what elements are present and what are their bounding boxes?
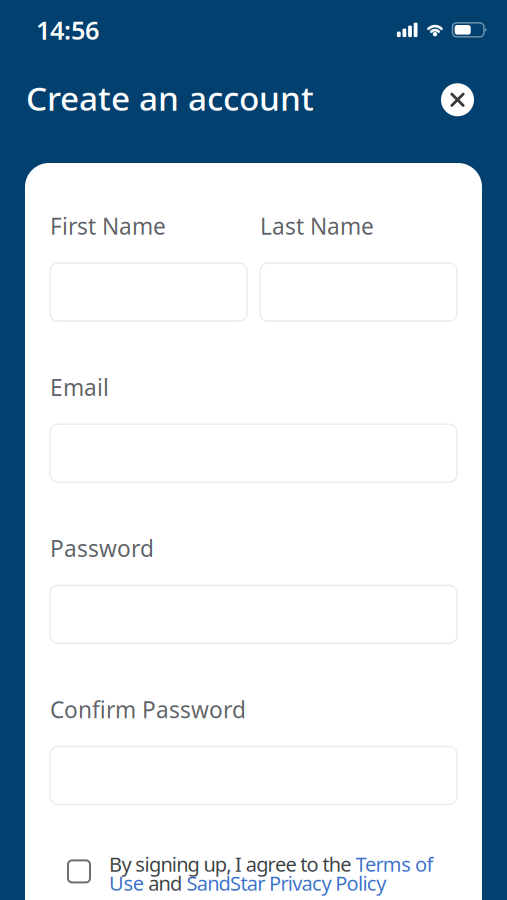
staticText: Last Name — [260, 211, 374, 241]
staticText: Password — [50, 533, 154, 563]
staticText: Terms of — [356, 851, 433, 877]
staticText: Create an account — [26, 76, 314, 120]
staticText: 14:56 — [36, 13, 99, 47]
button[interactable]: Terms of — [356, 851, 433, 877]
staticText: and — [144, 870, 186, 896]
staticText: By signing up, I agree to the — [109, 851, 356, 877]
button[interactable]: SandStar Privacy Policy — [186, 870, 386, 896]
button[interactable]: I agree to the terms — [68, 860, 90, 882]
staticText: Email — [50, 372, 109, 402]
staticText: Use — [109, 870, 144, 896]
staticText: First Name — [50, 211, 166, 241]
staticText: SandStar Privacy Policy — [186, 870, 386, 896]
staticText: Confirm Password — [50, 694, 246, 724]
button[interactable]: Close — [441, 83, 474, 116]
button[interactable]: Use — [109, 870, 144, 896]
